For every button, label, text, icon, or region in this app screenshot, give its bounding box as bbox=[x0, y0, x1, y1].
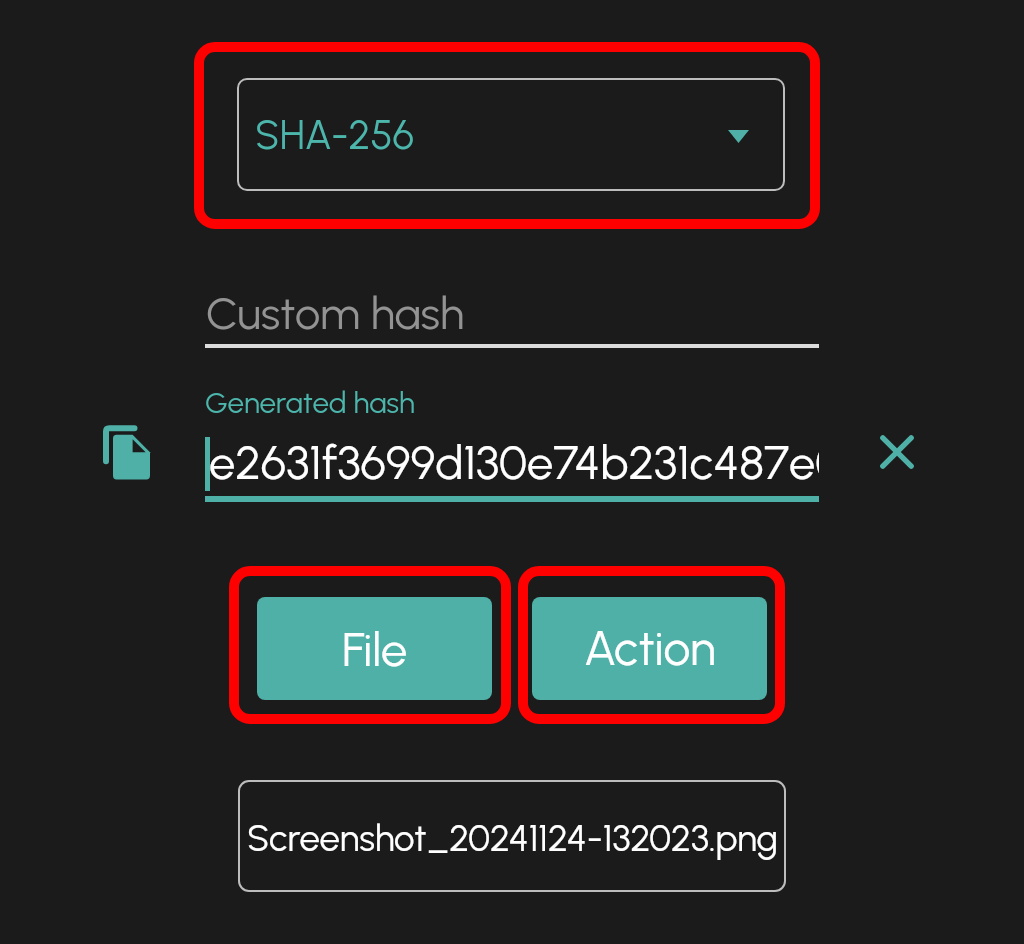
button[interactable]: Screenshot_20241124-132023.png bbox=[238, 780, 786, 892]
staticText: SHA-256 bbox=[255, 111, 415, 159]
staticText: Generated hash bbox=[205, 385, 415, 421]
button[interactable]: Custom hash bbox=[205, 270, 819, 348]
button[interactable]: File bbox=[257, 597, 492, 700]
staticText: Screenshot_20241124-132023.png bbox=[247, 816, 778, 860]
button[interactable]: Copy bbox=[100, 422, 156, 484]
button[interactable]: Clear bbox=[867, 422, 927, 482]
staticText: Action bbox=[584, 620, 716, 677]
button[interactable]: Action bbox=[532, 597, 767, 700]
button[interactable]: SHA-256 bbox=[237, 78, 785, 191]
staticText: File bbox=[342, 621, 408, 677]
staticText: Custom hash bbox=[206, 286, 465, 340]
staticText: e2631f3699d130e74b231c487e0 bbox=[209, 434, 819, 490]
